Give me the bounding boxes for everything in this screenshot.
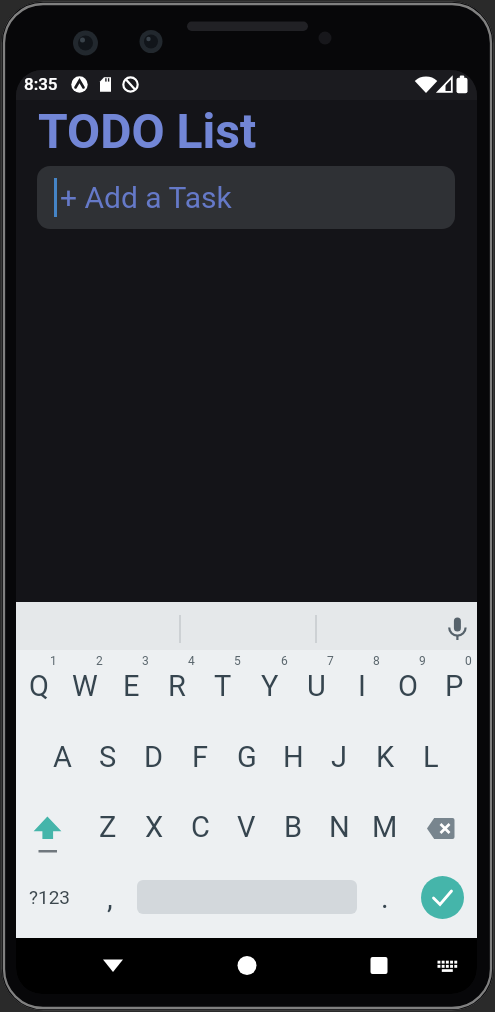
staticText: Y: [261, 669, 279, 703]
button[interactable]: L: [401, 733, 461, 781]
staticText: N: [329, 810, 350, 844]
button[interactable]: [421, 876, 464, 919]
staticText: 3: [142, 654, 149, 668]
staticText: T: [214, 669, 232, 703]
staticText: .: [381, 881, 389, 915]
button[interactable]: Y: [240, 662, 300, 710]
button[interactable]: Q: [16, 662, 69, 710]
staticText: TODO List: [38, 103, 257, 159]
staticText: P: [445, 669, 464, 703]
staticText: X: [145, 810, 164, 844]
staticText: M: [372, 810, 398, 844]
staticText: B: [284, 810, 303, 844]
button[interactable]: F: [170, 733, 230, 781]
staticText: 6: [281, 654, 288, 668]
button[interactable]: P: [424, 662, 477, 710]
button[interactable]: X: [124, 803, 184, 851]
button[interactable]: U: [286, 662, 346, 710]
staticText: O: [398, 669, 418, 703]
button[interactable]: [363, 949, 395, 981]
staticText: H: [283, 740, 304, 774]
button[interactable]: A: [32, 733, 92, 781]
staticText: 5: [234, 654, 241, 668]
button[interactable]: ,: [80, 874, 140, 922]
button[interactable]: B: [263, 803, 323, 851]
button[interactable]: .: [355, 874, 415, 922]
staticText: 8:35: [24, 74, 58, 94]
button[interactable]: I: [332, 662, 392, 710]
staticText: 4: [188, 654, 195, 668]
staticText: A: [53, 740, 72, 774]
staticText: G: [237, 740, 257, 774]
button[interactable]: O: [378, 662, 438, 710]
button[interactable]: T: [193, 662, 253, 710]
staticText: 2: [96, 654, 103, 668]
button[interactable]: H: [263, 733, 323, 781]
staticText: L: [423, 740, 439, 774]
staticText: E: [123, 669, 140, 703]
button[interactable]: + Add a Task: [37, 166, 455, 229]
staticText: 9: [419, 654, 426, 668]
button[interactable]: R: [147, 662, 207, 710]
button[interactable]: [423, 807, 463, 847]
staticText: V: [237, 810, 256, 844]
staticText: C: [191, 810, 210, 844]
button[interactable]: [97, 949, 129, 981]
button[interactable]: Z: [78, 803, 138, 851]
staticText: D: [144, 740, 164, 774]
staticText: F: [192, 740, 209, 774]
staticText: ,: [107, 881, 113, 915]
button[interactable]: S: [78, 733, 138, 781]
staticText: Z: [99, 810, 117, 844]
button[interactable]: J: [309, 733, 369, 781]
staticText: 8: [373, 654, 380, 668]
staticText: 1: [50, 654, 57, 668]
staticText: U: [307, 669, 326, 703]
button[interactable]: G: [217, 733, 277, 781]
staticText: R: [168, 669, 186, 703]
button[interactable]: K: [355, 733, 415, 781]
staticText: J: [331, 740, 348, 774]
button[interactable]: [231, 949, 263, 981]
button[interactable]: [431, 949, 463, 981]
button[interactable]: C: [170, 803, 230, 851]
button[interactable]: D: [124, 733, 184, 781]
staticText: S: [99, 740, 117, 774]
staticText: I: [358, 669, 366, 703]
staticText: 0: [465, 654, 472, 668]
staticText: W: [72, 669, 98, 703]
button[interactable]: V: [216, 803, 276, 851]
staticText: Q: [29, 669, 49, 703]
button[interactable]: N: [309, 803, 369, 851]
button[interactable]: W: [55, 662, 115, 710]
staticText: K: [376, 740, 395, 774]
button[interactable]: ?123: [20, 873, 80, 921]
button[interactable]: E: [101, 662, 161, 710]
staticText: 7: [327, 654, 334, 668]
button[interactable]: M: [355, 803, 415, 851]
staticText: + Add a Task: [60, 180, 232, 215]
button[interactable]: [28, 807, 68, 855]
staticText: ?123: [29, 886, 71, 908]
